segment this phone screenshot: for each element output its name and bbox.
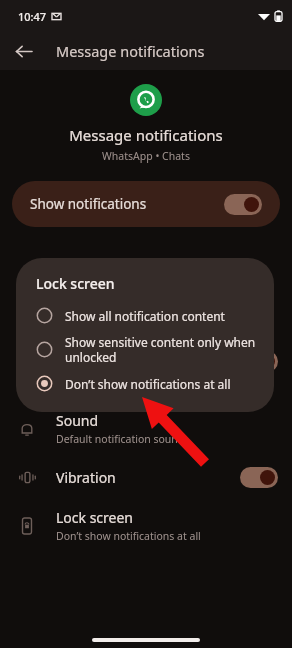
staticText: Show all notification content [65,308,260,324]
staticText: Show sensitive content only when unlocke… [65,334,260,365]
staticText: Vibration [56,468,116,487]
button[interactable]: Show notifications [12,181,280,227]
button[interactable]: Don’t show notifications at all [36,373,260,394]
staticText: Message notifications [69,125,223,145]
staticText: WhatsApp • Chats [102,149,190,163]
button[interactable]: Back [8,36,38,66]
staticText: Don’t show notifications at all [56,529,201,543]
staticText: Message notifications [56,41,205,61]
staticText: When device is unlocked, show notificati… [56,351,232,393]
button[interactable]: Show all notification content [36,305,260,326]
staticText: 10:47 [18,9,47,24]
staticText: Default notification sound [56,432,185,446]
staticText: Sound [56,411,99,430]
staticText: Don’t show notifications at all [65,376,260,392]
button[interactable]: Sound [0,402,292,455]
button[interactable]: Vibration [0,455,292,499]
button[interactable]: Show sensitive content only when unlocke… [36,332,260,367]
staticText: Pop on screen [56,330,150,349]
staticText: Show notifications [30,195,224,213]
button[interactable]: Pop on screen [0,321,292,402]
button[interactable]: Lock screen [0,499,292,552]
staticText: Lock screen [56,508,134,527]
staticText: Lock screen [36,274,115,293]
